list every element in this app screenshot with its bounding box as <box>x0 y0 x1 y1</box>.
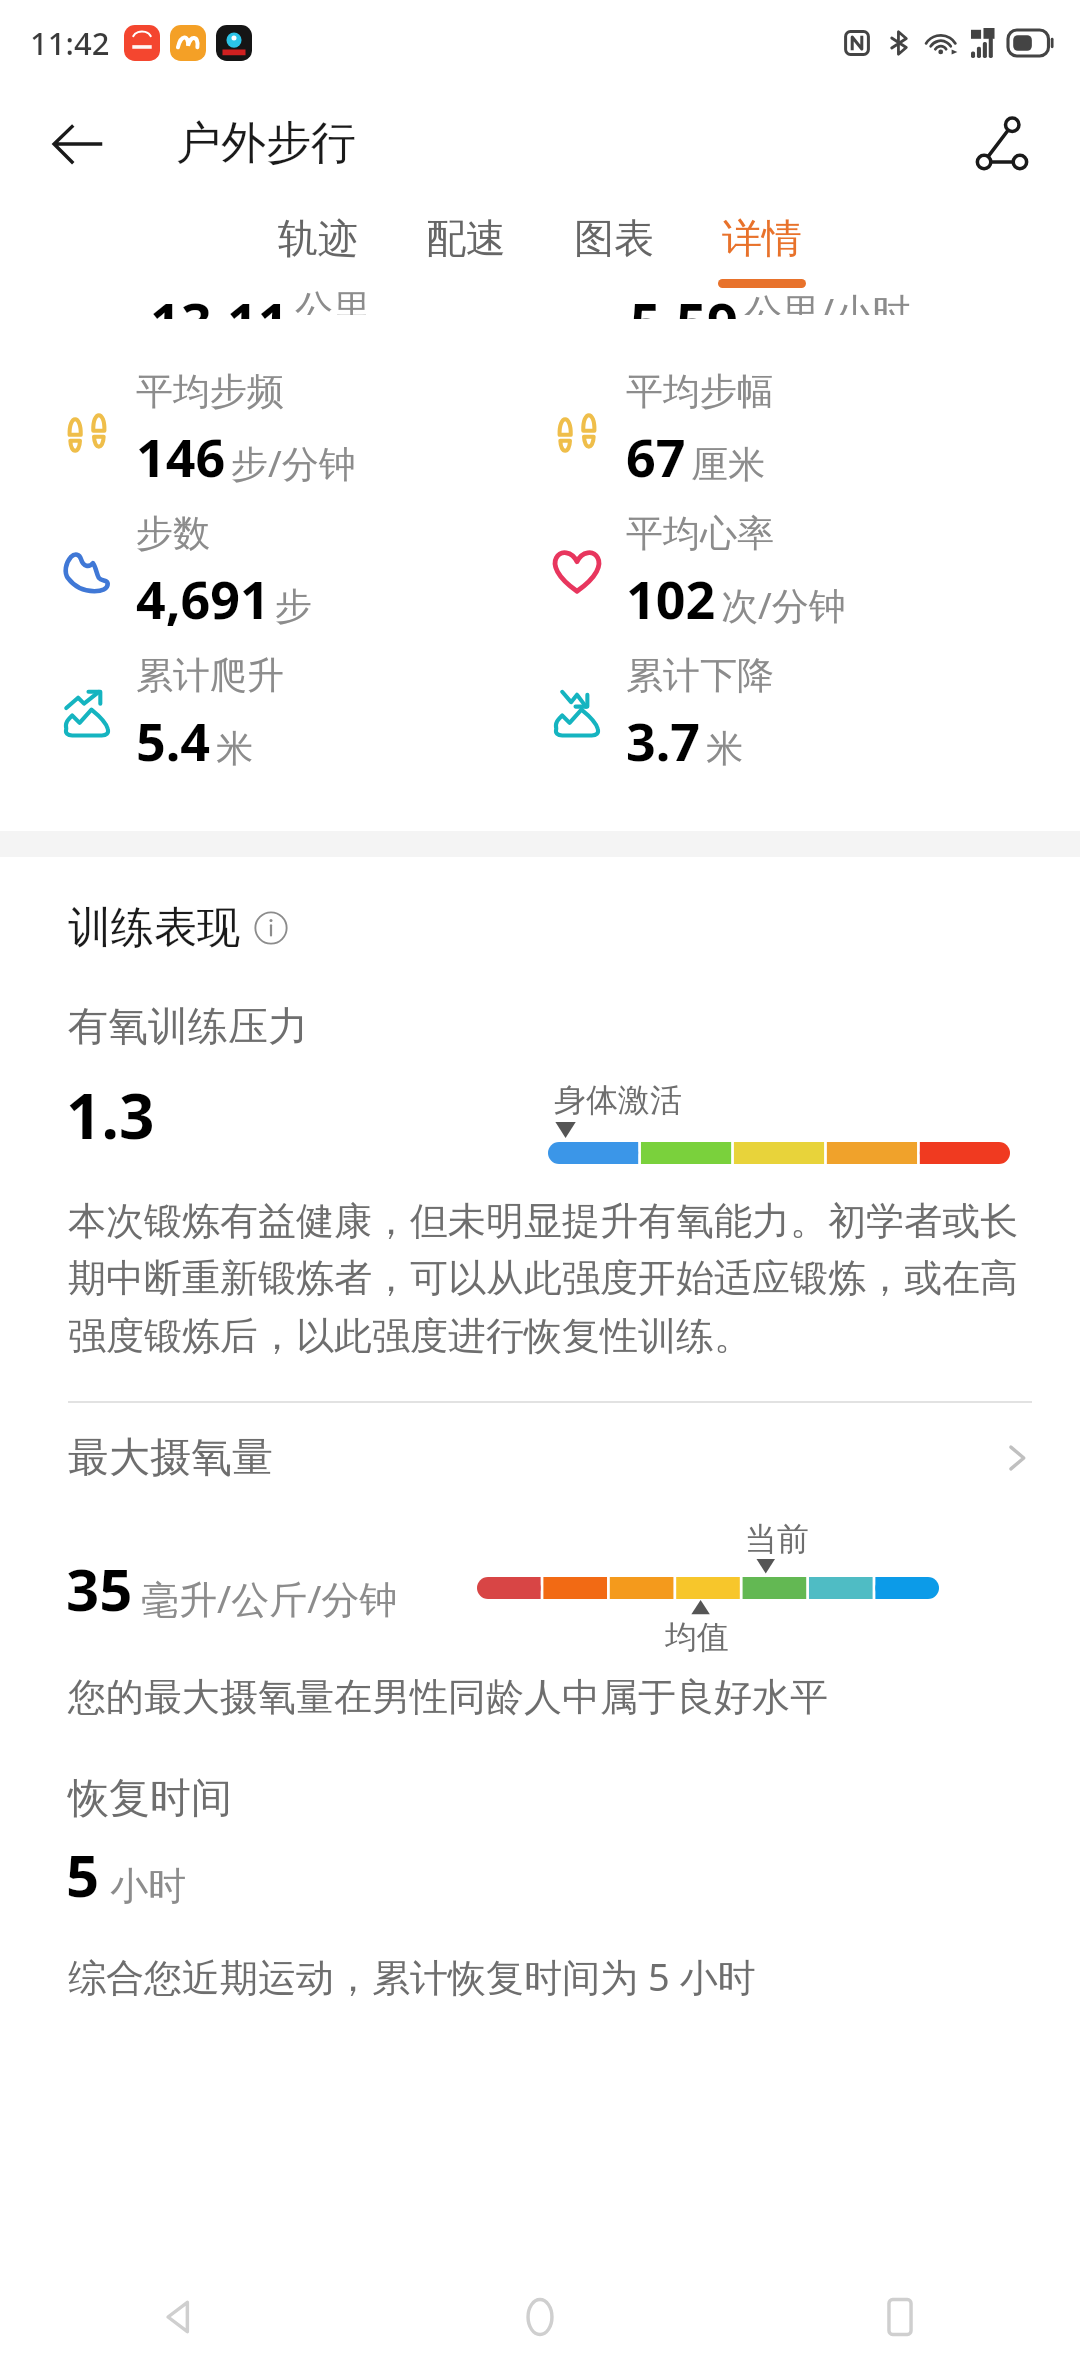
staticText: 配速 <box>426 213 506 263</box>
staticText: 毫升/公斤/分钟 <box>141 1572 398 1624</box>
staticText: 次/分钟 <box>721 579 846 630</box>
staticText: 户外步行 <box>176 115 356 172</box>
staticText: 最大摄氧量 <box>68 1432 273 1484</box>
staticText: 35 <box>66 1549 133 1628</box>
staticText: 102 <box>626 563 716 634</box>
staticText: 3.7 <box>626 705 701 776</box>
staticText: 累计爬升 <box>136 652 284 699</box>
staticText: 步/分钟 <box>231 437 356 488</box>
staticText: 身体激活 <box>554 1080 682 1120</box>
staticText: 11:42 <box>30 22 110 64</box>
button[interactable]: 累计下降 <box>540 643 1080 785</box>
button[interactable]: Home <box>360 2258 720 2376</box>
button[interactable]: 累计爬升 <box>50 643 540 785</box>
staticText: 步数 <box>136 510 210 557</box>
button[interactable]: 轨迹 <box>268 205 368 296</box>
other: Info <box>254 911 288 945</box>
staticText: 有氧训练压力 <box>68 1001 308 1051</box>
staticText: 本次锻炼有益健康，但未明显提升有氧能力。初学者或长期中断重新锻炼者，可以从此强度… <box>68 1197 1032 1361</box>
button[interactable]: 平均步频 <box>50 359 540 501</box>
staticText: 146 <box>136 421 226 492</box>
button[interactable]: Back <box>46 113 108 175</box>
staticText: 综合您近期运动，累计恢复时间为 5 小时 <box>68 1950 756 2002</box>
other: More <box>1000 1441 1034 1475</box>
staticText: 训练表现 <box>68 901 240 955</box>
button[interactable]: 详情 <box>712 205 812 296</box>
staticText: 平均步幅 <box>626 368 774 415</box>
staticText: 1.3 <box>66 1073 155 1157</box>
staticText: 67 <box>626 421 686 492</box>
staticText: 公里 <box>295 285 371 315</box>
staticText: 4,691 <box>136 563 270 634</box>
staticText: 5.4 <box>136 705 211 776</box>
staticText: 您的最大摄氧量在男性同龄人中属于良好水平 <box>68 1673 828 1721</box>
staticText: 公里/小时 <box>744 285 911 315</box>
staticText: 图表 <box>574 213 654 263</box>
button[interactable]: 平均心率 <box>540 501 1080 643</box>
staticText: 步 <box>275 583 312 630</box>
staticText: 厘米 <box>691 441 765 488</box>
staticText: 恢复时间 <box>68 1773 232 1825</box>
staticText: 米 <box>216 725 253 772</box>
staticText: 小时 <box>110 1862 186 1910</box>
button[interactable]: 配速 <box>416 205 516 296</box>
staticText: 均值 <box>665 1617 729 1657</box>
button[interactable]: 图表 <box>564 205 664 296</box>
button[interactable]: 训练表现 <box>68 901 288 955</box>
staticText: 5.59 <box>630 285 738 319</box>
staticText: 米 <box>706 725 743 772</box>
staticText: 累计下降 <box>626 652 774 699</box>
button[interactable]: Recents <box>720 2258 1080 2376</box>
button[interactable]: Back <box>0 2258 360 2376</box>
staticText: 当前 <box>745 1519 809 1559</box>
staticText: 平均步频 <box>136 368 284 415</box>
staticText: 13.11 <box>150 285 289 319</box>
button[interactable]: 步数 <box>50 501 540 643</box>
button[interactable]: Share <box>970 112 1034 176</box>
staticText: 5 <box>66 1835 100 1914</box>
staticText: 平均心率 <box>626 510 774 557</box>
button[interactable]: 最大摄氧量 <box>0 1403 1080 1513</box>
button[interactable]: 平均步幅 <box>540 359 1080 501</box>
staticText: 轨迹 <box>278 213 358 263</box>
staticText: 详情 <box>722 213 802 263</box>
